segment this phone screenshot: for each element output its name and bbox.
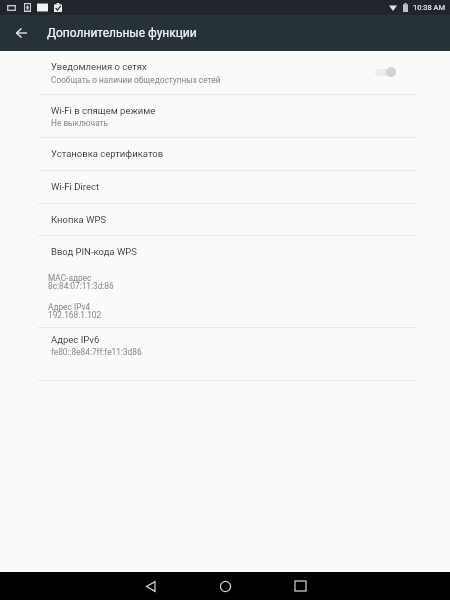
staticText: 10:38 AM bbox=[413, 3, 445, 12]
button[interactable]: Wi-Fi в спящем режиме bbox=[0, 95, 450, 137]
staticText: Wi-Fi в спящем режиме bbox=[51, 105, 156, 116]
button[interactable]: Ввод PIN-кода WPS bbox=[0, 236, 450, 266]
staticText: 192.168.1.102 bbox=[48, 310, 102, 320]
staticText: Сообщать о наличии общедоступных сетей bbox=[51, 75, 221, 85]
staticText: Установка сертификатов bbox=[51, 148, 164, 159]
staticText: Wi-Fi Direct bbox=[51, 181, 100, 192]
button[interactable]: Home bbox=[202, 572, 248, 600]
staticText: Не выключать bbox=[51, 118, 109, 128]
button[interactable]: Back bbox=[128, 572, 173, 600]
staticText: Кнопка WPS bbox=[51, 214, 107, 225]
staticText: fe80::8e84:7ff:fe11:3d86 bbox=[51, 347, 142, 357]
button[interactable]: Кнопка WPS bbox=[0, 204, 450, 235]
button[interactable]: Установка сертификатов bbox=[0, 138, 450, 170]
button[interactable]: Back bbox=[8, 20, 34, 46]
staticText: MAC-адрес bbox=[48, 273, 92, 283]
staticText: Дополнительные функции bbox=[47, 26, 197, 40]
staticText: 8c:84:07:11:3d:86 bbox=[48, 281, 114, 291]
button[interactable]: Адрес IPv6 bbox=[0, 328, 450, 380]
staticText: Адрес IPv4 bbox=[48, 302, 91, 312]
staticText: Ввод PIN-кода WPS bbox=[51, 246, 137, 257]
button[interactable]: Уведомления о сетях bbox=[0, 51, 450, 94]
button[interactable]: Recent apps bbox=[277, 572, 323, 600]
button[interactable]: Wi-Fi Direct bbox=[0, 171, 450, 203]
staticText: Адрес IPv6 bbox=[51, 334, 100, 345]
staticText: Уведомления о сетях bbox=[51, 61, 147, 72]
